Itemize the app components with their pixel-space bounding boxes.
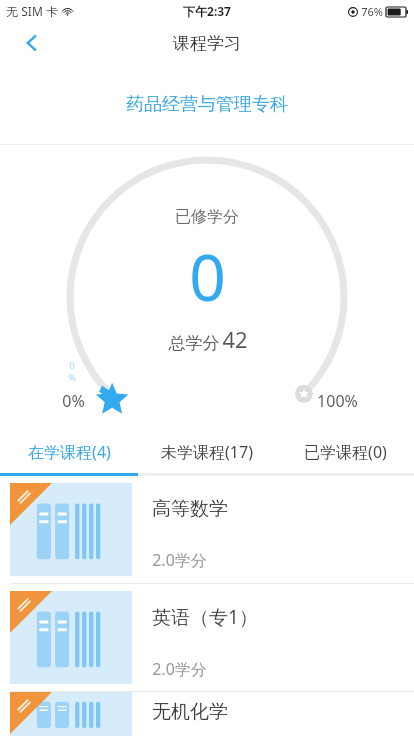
staticText: 已学课程(0): [304, 441, 387, 463]
staticText: 100%: [317, 390, 358, 412]
staticText: %: [68, 371, 76, 383]
staticText: 42: [222, 324, 248, 354]
button[interactable]: 英语（专1）: [0, 584, 414, 691]
staticText: 在学课程(4): [28, 441, 111, 463]
button[interactable]: 药品经营与管理专科: [0, 64, 414, 144]
staticText: 无 SIM 卡: [6, 3, 58, 19]
staticText: 2.0学分: [152, 549, 207, 571]
staticText: 0: [189, 233, 226, 320]
staticText: 英语（专1）: [152, 604, 258, 630]
staticText: 76%: [361, 4, 383, 19]
staticText: 高等数学: [152, 497, 228, 521]
staticText: 0: [69, 359, 75, 371]
button[interactable]: 高等数学: [0, 476, 414, 583]
staticText: 已修学分: [175, 207, 239, 227]
staticText: 0%: [62, 390, 85, 412]
staticText: 总学分: [166, 331, 222, 354]
button[interactable]: 无机化学: [0, 692, 414, 736]
button[interactable]: 已学课程(0): [276, 430, 414, 473]
button[interactable]: Back: [12, 23, 52, 63]
button[interactable]: 在学课程(4): [0, 430, 138, 473]
staticText: 2.0学分: [152, 658, 207, 680]
staticText: 未学课程(17): [161, 441, 253, 463]
staticText: 无机化学: [152, 700, 228, 724]
staticText: 课程学习: [173, 33, 241, 54]
button[interactable]: 未学课程(17): [138, 430, 276, 473]
staticText: 下午2:37: [183, 3, 231, 19]
staticText: 药品经营与管理专科: [126, 93, 288, 116]
